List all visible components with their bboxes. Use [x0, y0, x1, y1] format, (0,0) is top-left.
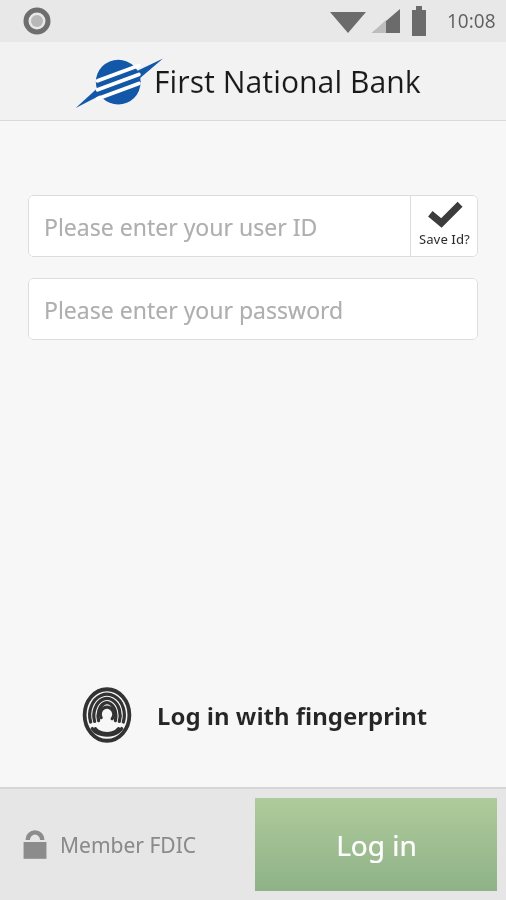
staticText: Please enter your user ID [44, 211, 318, 242]
button[interactable]: Member FDIC [22, 830, 197, 860]
button[interactable]: Log in [255, 798, 497, 891]
staticText: Save Id? [419, 230, 470, 248]
button[interactable]: Save Id [411, 195, 478, 257]
button[interactable]: Please enter your user ID [28, 195, 410, 257]
staticText: Log in [336, 826, 417, 864]
staticText: Member FDIC [60, 831, 197, 860]
staticText: Log in with fingerprint [157, 699, 428, 732]
staticText: Please enter your password [44, 294, 344, 325]
button[interactable]: Please enter your password [28, 278, 478, 340]
staticText: First National Bank [154, 61, 421, 102]
staticText: 10:08 [447, 8, 496, 34]
button[interactable]: Log in with fingerprint [0, 680, 506, 750]
